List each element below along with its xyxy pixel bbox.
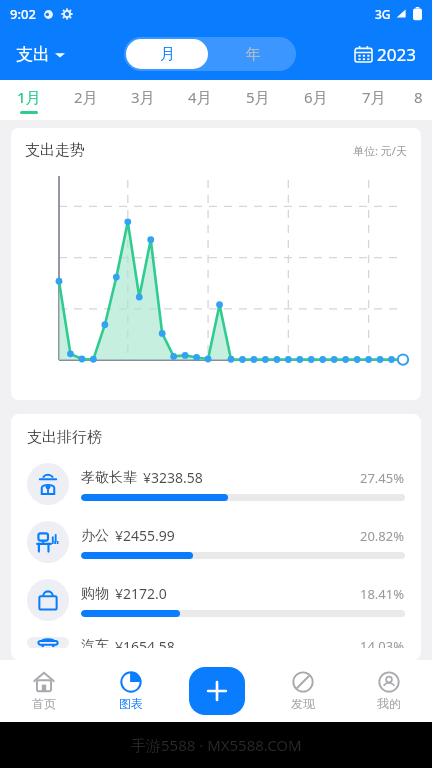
button[interactable]: 6月 bbox=[287, 80, 345, 120]
button[interactable]: 5月 bbox=[229, 80, 287, 120]
button[interactable]: 孝敬长辈 bbox=[11, 455, 421, 513]
staticText: ¥2455.99 bbox=[115, 526, 175, 545]
staticText: 18.41% bbox=[360, 585, 405, 603]
button[interactable]: 汽车 bbox=[11, 629, 421, 656]
staticText: 3G bbox=[375, 6, 391, 22]
button[interactable]: 3月 bbox=[114, 80, 171, 120]
staticText: 我的 bbox=[377, 696, 401, 711]
staticText: 8 bbox=[414, 87, 423, 107]
button[interactable]: 首页 bbox=[0, 660, 87, 722]
staticText: 年 bbox=[246, 45, 261, 64]
button[interactable]: 2月 bbox=[57, 80, 114, 120]
staticText: 14.03% bbox=[360, 637, 405, 648]
staticText: 1月 bbox=[17, 87, 41, 107]
button[interactable]: 年 bbox=[210, 37, 296, 71]
staticText: 单位: 元/天 bbox=[353, 143, 407, 158]
staticText: ¥3238.58 bbox=[143, 468, 203, 487]
staticText: 4月 bbox=[188, 87, 212, 107]
staticText: 手游5588 · MX5588.COM bbox=[131, 735, 302, 755]
button[interactable]: 购物 bbox=[11, 571, 421, 629]
button[interactable]: 支出 bbox=[14, 40, 67, 69]
button[interactable]: 7月 bbox=[345, 80, 403, 120]
button[interactable]: 图表 bbox=[87, 660, 174, 722]
staticText: 3月 bbox=[131, 87, 155, 107]
button[interactable]: 办公 bbox=[11, 513, 421, 571]
staticText: 6月 bbox=[304, 87, 328, 107]
staticText: 2月 bbox=[74, 87, 98, 107]
staticText: 办公 bbox=[81, 527, 109, 545]
staticText: 首页 bbox=[32, 696, 56, 711]
staticText: 孝敬长辈 bbox=[81, 469, 137, 487]
staticText: 5月 bbox=[246, 87, 270, 107]
staticText: 购物 bbox=[81, 585, 109, 603]
staticText: 27.45% bbox=[360, 469, 405, 487]
staticText: 支出排行榜 bbox=[27, 428, 102, 447]
staticText: 7月 bbox=[362, 87, 386, 107]
staticText: 20.82% bbox=[360, 527, 405, 545]
staticText: 月 bbox=[160, 45, 175, 64]
button[interactable]: 月 bbox=[126, 39, 208, 69]
staticText: ¥2172.0 bbox=[115, 584, 167, 603]
staticText: 支出走势 bbox=[25, 141, 85, 160]
staticText: 发现 bbox=[291, 696, 315, 711]
button[interactable]: 2023 bbox=[353, 39, 418, 70]
staticText: 支出 bbox=[16, 44, 50, 65]
button[interactable]: 8 bbox=[403, 80, 432, 120]
staticText: ¥1654.58 bbox=[115, 637, 175, 648]
button[interactable]: 4月 bbox=[171, 80, 229, 120]
button[interactable]: 1月 bbox=[0, 80, 57, 120]
staticText: 9:02 bbox=[10, 5, 36, 23]
staticText: 图表 bbox=[119, 696, 143, 711]
button[interactable]: 发现 bbox=[260, 660, 346, 722]
staticText: 汽车 bbox=[81, 637, 109, 648]
button[interactable]: Add bbox=[189, 667, 245, 715]
button[interactable]: 我的 bbox=[346, 660, 432, 722]
staticText: 2023 bbox=[377, 43, 416, 66]
